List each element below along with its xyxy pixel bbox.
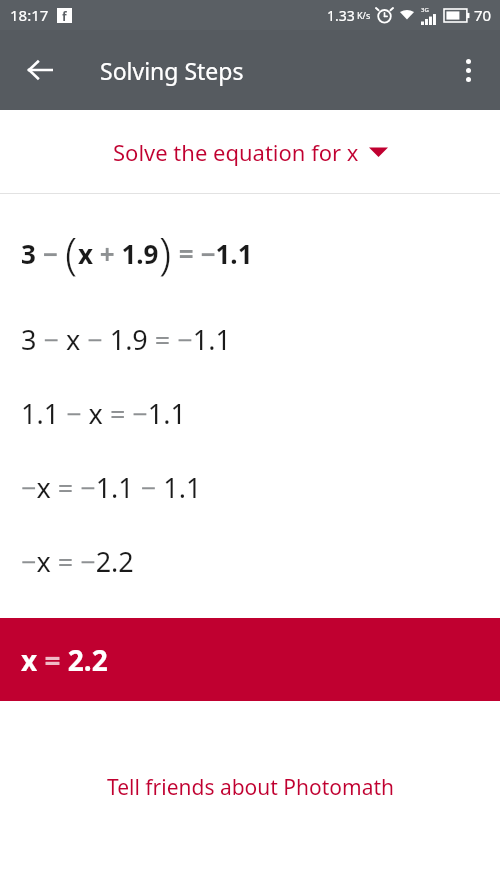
staticText: x + 1.9	[78, 236, 159, 271]
staticText: f	[62, 8, 67, 23]
button[interactable]: x = 2.2	[0, 618, 500, 701]
staticText: Solve the equation for x	[113, 137, 359, 167]
staticText: x = 2.2	[21, 641, 108, 679]
button[interactable]: More options	[444, 46, 492, 94]
staticText: K/s	[357, 9, 371, 21]
button[interactable]: Tell friends about Photomath	[95, 767, 406, 808]
staticText: −x = −1.1 − 1.1	[21, 469, 202, 506]
button[interactable]: Solve the equation for x	[0, 110, 500, 193]
staticText: Solving Steps	[100, 55, 244, 86]
button[interactable]: Back	[16, 46, 64, 94]
staticText: (	[65, 223, 78, 283]
staticText: 1.1 − x = −1.1	[21, 395, 186, 432]
staticText: 18:17	[10, 5, 49, 25]
staticText: 3 − x − 1.9 = −1.1	[21, 321, 231, 358]
staticText: 1.33	[327, 6, 355, 25]
staticText: )	[159, 223, 172, 283]
staticText: −x = −2.2	[21, 543, 134, 580]
staticText: = −1.1	[172, 236, 253, 271]
staticText: 3 −	[21, 236, 65, 271]
staticText: 70	[474, 5, 492, 25]
staticText: Tell friends about Photomath	[107, 773, 394, 802]
staticText: 3G	[421, 6, 429, 14]
